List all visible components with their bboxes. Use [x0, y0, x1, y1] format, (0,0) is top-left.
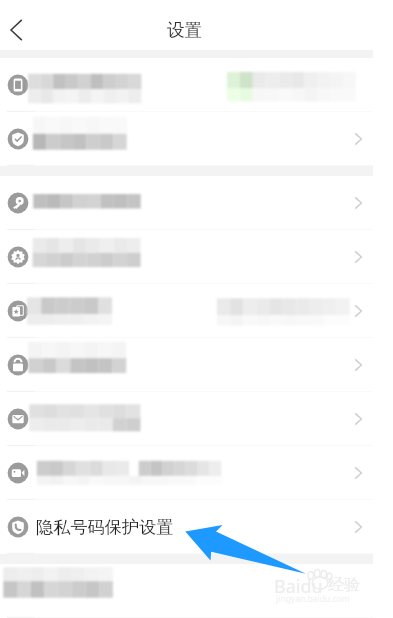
- button[interactable]: Password: [0, 176, 393, 230]
- staticText: 经验: [328, 575, 360, 595]
- button[interactable]: Privacy: [0, 338, 393, 392]
- staticText: Baidu: [274, 574, 323, 599]
- staticText: 隐私号码保护设置: [36, 516, 174, 538]
- button[interactable]: Mail: [0, 392, 393, 446]
- button[interactable]: 隐私号码保护设置: [0, 500, 393, 554]
- button[interactable]: Device: [0, 58, 393, 112]
- staticText: jingyan.baidu.com: [276, 593, 350, 605]
- staticText: 设置: [167, 19, 202, 41]
- button[interactable]: Account: [0, 230, 393, 284]
- button[interactable]: Video: [0, 446, 393, 500]
- button[interactable]: Security: [0, 112, 393, 166]
- button[interactable]: Section: [0, 564, 393, 618]
- button[interactable]: Back: [0, 9, 38, 51]
- button[interactable]: Cards: [0, 284, 393, 338]
